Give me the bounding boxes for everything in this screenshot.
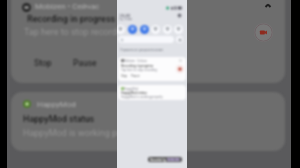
button[interactable]: Expand recorder menu: [261, 0, 275, 14]
staticText: Управление уведомлениями: [120, 48, 164, 52]
staticText: Ср, 5 мая: [119, 17, 132, 21]
button[interactable]: Bluetooth: [140, 25, 149, 34]
button[interactable]: Mobizen · Сейчас: [118, 57, 186, 81]
staticText: HappyMod: [124, 87, 139, 90]
button[interactable]: Airplane mode: [174, 25, 183, 34]
staticText: HappyMod is working properly: [121, 95, 163, 99]
staticText: Recorded by: [150, 158, 167, 161]
staticText: Tap here to stop recording: [24, 27, 129, 38]
button[interactable]: Brightness settings: [176, 36, 183, 43]
staticText: 18:40: [119, 13, 131, 18]
staticText: Pause: [131, 74, 140, 78]
staticText: HappyMod status: [23, 114, 95, 125]
staticText: Recording in progress: [27, 14, 116, 25]
button[interactable]: Stop recording: [254, 23, 273, 42]
staticText: Recording in progress: [121, 64, 154, 68]
staticText: HappyMod: [37, 100, 76, 109]
button[interactable]: Recorded by Mobizen: [150, 158, 180, 161]
button[interactable]: Sound: [128, 25, 137, 34]
staticText: HappyMod is working properly: [23, 128, 145, 139]
button[interactable]: Flashlight: [163, 25, 172, 34]
staticText: MOBIZEN: [167, 158, 180, 161]
button[interactable]: Recording indicator: [176, 65, 184, 73]
button[interactable]: Brightness: [118, 36, 174, 43]
staticText: Mobizen · Сейчас: [124, 59, 147, 62]
staticText: Stop: [34, 58, 52, 68]
button[interactable]: HappyMod: [118, 85, 186, 100]
staticText: Tap here to stop recording: [121, 68, 158, 72]
staticText: Stop: [121, 74, 128, 78]
button[interactable]: Wi-Fi: [117, 25, 125, 34]
staticText: Pause: [73, 58, 97, 68]
staticText: Mobizen • Сейчас: [35, 2, 100, 11]
button[interactable]: Auto rotate: [151, 25, 160, 34]
button[interactable]: Settings: [177, 13, 182, 18]
staticText: HappyMod status: [121, 91, 148, 95]
